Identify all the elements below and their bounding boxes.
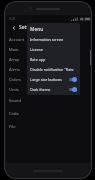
button[interactable]: Back — [9, 23, 18, 32]
staticText: License — [30, 47, 77, 52]
staticText: Colors — [9, 77, 21, 82]
button[interactable]: Disable notification "Rate app" — [27, 64, 80, 74]
button[interactable]: Array — [9, 54, 90, 64]
staticText: File — [9, 124, 16, 129]
staticText: Large size buttons (+/-) — [30, 77, 68, 82]
button[interactable]: Main — [9, 44, 90, 54]
staticText: Rate app — [30, 57, 77, 62]
button[interactable]: Sound — [9, 94, 90, 107]
staticText: 9:41 — [9, 16, 16, 21]
button[interactable]: Large size buttons (+/-) — [27, 74, 80, 84]
staticText: Sound — [9, 98, 22, 103]
staticText: Array — [9, 57, 20, 62]
staticText: Code — [9, 111, 19, 116]
button[interactable]: Code — [9, 107, 90, 120]
staticText: Alerts — [9, 67, 20, 72]
button[interactable]: Information screen — [27, 34, 80, 44]
staticText: Units — [9, 87, 19, 92]
button[interactable]: Units — [9, 84, 90, 94]
button[interactable]: Account — [9, 34, 90, 44]
staticText: Information screen — [30, 37, 77, 42]
staticText: Dark theme — [30, 87, 68, 92]
button[interactable]: File — [9, 120, 90, 133]
staticText: Main — [9, 47, 19, 52]
button[interactable]: Rate app — [27, 54, 80, 64]
staticText: Menu — [30, 26, 44, 33]
staticText: Account — [9, 37, 25, 42]
button[interactable]: Dark theme — [27, 84, 80, 94]
button[interactable]: License — [27, 44, 80, 54]
staticText: Settings — [19, 24, 39, 31]
button[interactable]: Alerts — [9, 64, 90, 74]
staticText: Disable notification "Rate app" — [30, 67, 77, 72]
button[interactable]: Colors — [9, 74, 90, 84]
